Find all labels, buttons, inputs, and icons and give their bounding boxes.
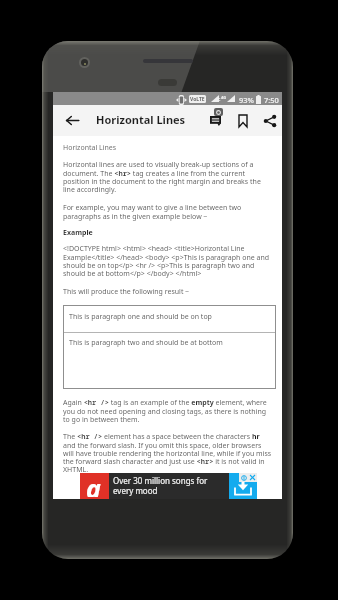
staticText: This will produce the following result − (63, 287, 190, 297)
staticText: 7:50 (264, 95, 279, 105)
staticText: The <hr /> element has a space between t… (63, 432, 272, 474)
staticText: Horizontal lines are used to visually br… (63, 160, 272, 194)
staticText: This is paragraph two and should be at b… (69, 338, 223, 348)
button[interactable]: Bookmark (230, 105, 256, 136)
staticText: Horizontal Lines (63, 143, 117, 153)
staticText: 93% (239, 95, 254, 105)
button[interactable]: Share (257, 105, 283, 136)
button[interactable]: Install app (229, 473, 257, 499)
staticText: Horizontal Lines (96, 112, 186, 127)
staticText: Again <hr /> tag is an example of the em… (63, 398, 272, 424)
staticText: 4G (221, 95, 227, 100)
staticText: Over 30 million songs for (113, 475, 208, 486)
button[interactable]: Comments (207, 102, 233, 133)
staticText: every mood (113, 485, 158, 496)
staticText: This is paragraph one and should be on t… (69, 312, 212, 322)
staticText: <!DOCTYPE html> <html> <head> <title>Hor… (63, 244, 272, 278)
staticText: For example, you may want to give a line… (63, 203, 272, 221)
staticText: Example (63, 228, 93, 238)
button[interactable]: g (80, 473, 257, 499)
button[interactable]: Back (59, 105, 85, 136)
staticText: VoLTE (190, 96, 205, 103)
staticText: : (219, 96, 221, 103)
staticText: g (86, 471, 101, 497)
